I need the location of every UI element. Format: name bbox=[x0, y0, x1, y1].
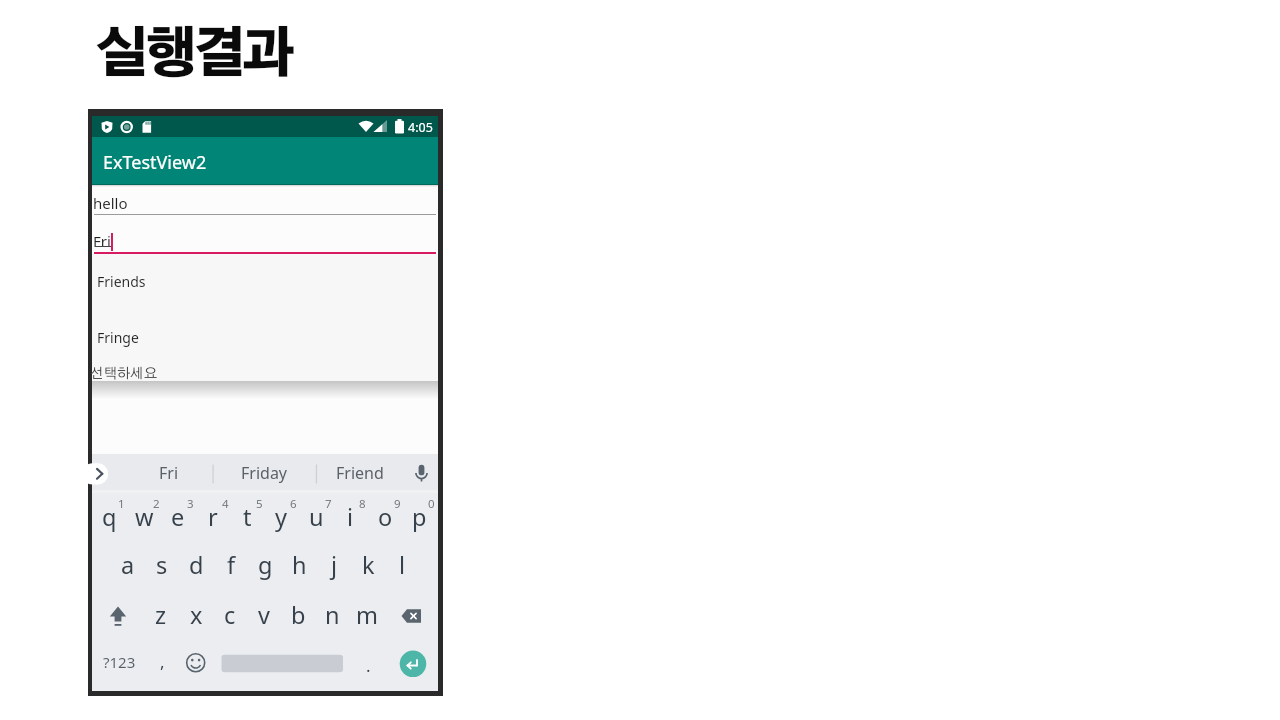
button[interactable]: 선택하세요 bbox=[92, 116, 160, 130]
button[interactable] bbox=[101, 598, 135, 634]
staticText: t bbox=[243, 501, 252, 533]
button[interactable]: Fringe bbox=[92, 116, 134, 135]
staticText: 8 bbox=[359, 496, 366, 512]
staticText: z bbox=[155, 599, 167, 631]
staticText: r bbox=[208, 501, 218, 533]
button[interactable]: Friday bbox=[219, 456, 309, 490]
staticText: n bbox=[325, 599, 340, 631]
staticText: 9 bbox=[394, 496, 401, 512]
button[interactable]: q bbox=[92, 493, 126, 541]
staticText: y bbox=[275, 501, 287, 533]
button[interactable] bbox=[92, 137, 438, 185]
button[interactable]: p bbox=[402, 493, 436, 541]
staticText: 2 bbox=[153, 496, 160, 512]
staticText: x bbox=[190, 599, 203, 631]
button[interactable]: Fri bbox=[129, 456, 209, 490]
staticText: c bbox=[224, 599, 236, 631]
button[interactable]: hello bbox=[92, 116, 127, 136]
button[interactable]: e bbox=[161, 493, 195, 541]
button[interactable]: o bbox=[368, 493, 402, 541]
button[interactable]: a bbox=[111, 541, 145, 589]
button[interactable]: ?123 bbox=[97, 645, 141, 679]
staticText: v bbox=[258, 599, 270, 631]
staticText: ExTestView2 bbox=[103, 150, 207, 175]
staticText: 5 bbox=[256, 496, 263, 512]
button[interactable] bbox=[92, 460, 110, 484]
button[interactable]: x bbox=[179, 591, 213, 639]
button[interactable]: h bbox=[282, 541, 316, 589]
button[interactable]: u bbox=[299, 493, 333, 541]
staticText: ?123 bbox=[103, 652, 136, 672]
button[interactable]: Friends bbox=[92, 116, 141, 135]
button[interactable]: g bbox=[248, 541, 282, 589]
button[interactable]: d bbox=[179, 541, 213, 589]
staticText: l bbox=[399, 549, 406, 581]
button[interactable] bbox=[400, 651, 427, 678]
button[interactable]: r bbox=[196, 493, 230, 541]
button[interactable]: Fri bbox=[92, 116, 110, 136]
staticText: j bbox=[331, 549, 338, 581]
staticText: s bbox=[156, 549, 168, 581]
button[interactable]: y bbox=[264, 493, 298, 541]
button[interactable]: f bbox=[214, 541, 248, 589]
button[interactable] bbox=[394, 598, 429, 634]
staticText: q bbox=[102, 501, 117, 533]
button[interactable]: b bbox=[281, 591, 315, 639]
staticText: Fri bbox=[159, 462, 179, 484]
staticText: g bbox=[258, 549, 273, 581]
staticText: 1 bbox=[118, 496, 125, 512]
button[interactable] bbox=[407, 459, 436, 486]
staticText: 0 bbox=[428, 496, 435, 512]
staticText: 4:05 bbox=[408, 119, 433, 136]
staticText: , bbox=[160, 650, 165, 673]
staticText: b bbox=[291, 599, 306, 631]
button[interactable]: w bbox=[127, 493, 161, 541]
staticText: k bbox=[362, 549, 375, 581]
button[interactable]: Friend bbox=[315, 456, 405, 490]
button[interactable]: k bbox=[351, 541, 385, 589]
staticText: i bbox=[347, 501, 354, 533]
button[interactable]: j bbox=[317, 541, 351, 589]
staticText: 7 bbox=[325, 496, 332, 512]
button[interactable]: v bbox=[247, 591, 281, 639]
staticText: 실행결과 bbox=[95, 30, 290, 83]
button[interactable]: t bbox=[230, 493, 264, 541]
button[interactable] bbox=[222, 655, 344, 673]
staticText: m bbox=[356, 599, 378, 631]
button[interactable]: i bbox=[333, 493, 367, 541]
staticText: h bbox=[292, 549, 307, 581]
staticText: p bbox=[412, 501, 427, 533]
staticText: Friday bbox=[241, 462, 288, 484]
staticText: a bbox=[121, 549, 135, 581]
staticText: d bbox=[189, 549, 204, 581]
staticText: 3 bbox=[187, 496, 194, 512]
button[interactable]: z bbox=[144, 591, 178, 639]
staticText: 6 bbox=[290, 496, 297, 512]
button[interactable]: l bbox=[385, 541, 419, 589]
staticText: o bbox=[378, 501, 393, 533]
button[interactable]: c bbox=[213, 591, 247, 639]
staticText: f bbox=[227, 549, 236, 581]
button[interactable]: s bbox=[145, 541, 179, 589]
button[interactable]: n bbox=[315, 591, 349, 639]
staticText: Friend bbox=[336, 462, 384, 484]
button[interactable]: m bbox=[350, 591, 384, 639]
button[interactable]: , bbox=[145, 637, 179, 685]
staticText: w bbox=[135, 501, 154, 533]
staticText: 4 bbox=[222, 496, 229, 512]
staticText: e bbox=[171, 501, 185, 533]
staticText: . bbox=[366, 654, 371, 677]
staticText: u bbox=[309, 501, 324, 533]
button[interactable]: . bbox=[351, 641, 385, 689]
